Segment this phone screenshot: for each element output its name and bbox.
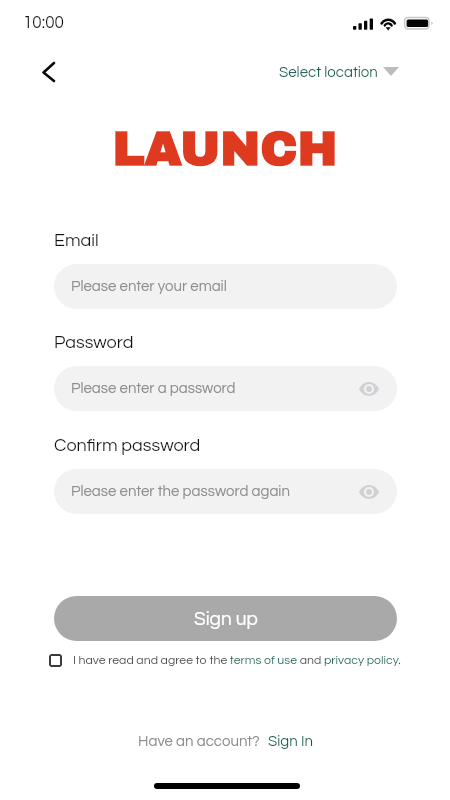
staticText: Please enter a password xyxy=(71,381,236,396)
button[interactable]: Please enter a password xyxy=(54,366,397,411)
button[interactable]: Show password xyxy=(359,482,379,502)
button[interactable]: Show password xyxy=(359,379,379,399)
staticText: Email xyxy=(54,231,99,250)
button[interactable]: Please enter the password again xyxy=(54,469,397,514)
staticText: Sign up xyxy=(194,609,258,629)
button[interactable]: Back xyxy=(34,58,62,86)
staticText: Please enter the password again xyxy=(71,484,290,499)
staticText: Password xyxy=(54,333,134,352)
button[interactable]: Select location xyxy=(279,65,399,80)
staticText: Confirm password xyxy=(54,436,201,455)
staticText: Have an account? xyxy=(138,734,260,749)
button[interactable]: Sign up xyxy=(54,596,397,641)
staticText: I have read and agree to the terms of us… xyxy=(73,654,401,667)
button[interactable]: Please enter your email xyxy=(54,264,397,309)
staticText: Sign In xyxy=(268,734,313,749)
staticText: Please enter your email xyxy=(71,279,227,294)
staticText: 10:00 xyxy=(23,14,64,32)
staticText: Select location xyxy=(279,65,378,80)
staticText: LAUNCH xyxy=(0,123,450,175)
button[interactable]: Agree to terms checkbox xyxy=(49,654,62,667)
button[interactable]: Sign In xyxy=(268,734,313,749)
